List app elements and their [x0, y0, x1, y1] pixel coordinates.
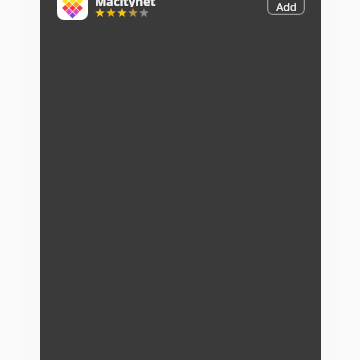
button[interactable]: Add: [267, 0, 305, 15]
staticText: Macitynet: [95, 0, 156, 7]
staticText: Add: [276, 0, 297, 14]
